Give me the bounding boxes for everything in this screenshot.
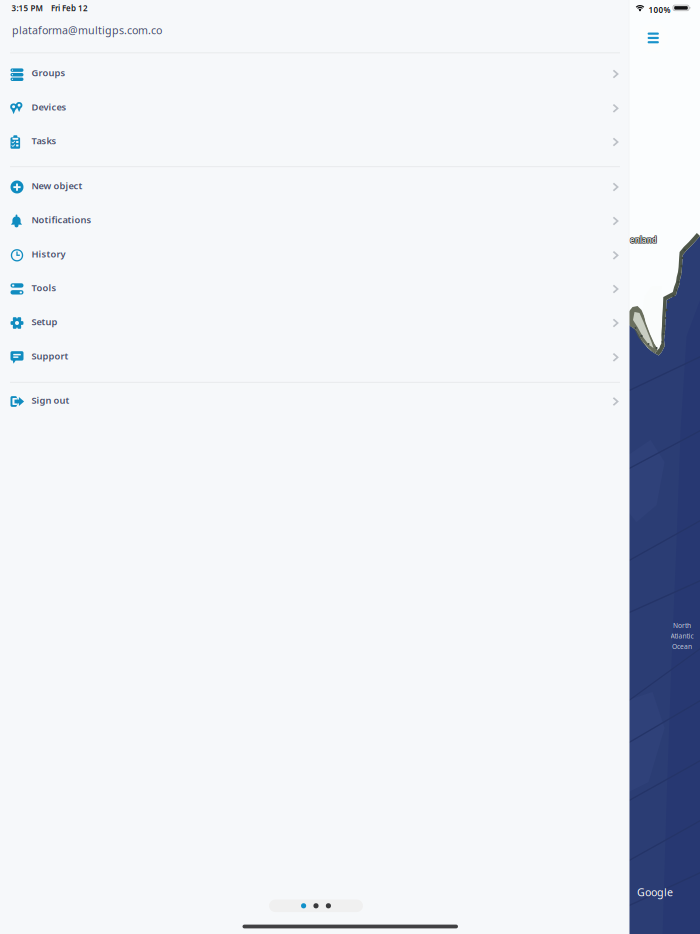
- staticText: Atlantic: [670, 631, 693, 640]
- button[interactable]: Tasks: [0, 125, 628, 159]
- staticText: New object: [31, 179, 82, 192]
- button[interactable]: Sign out: [0, 384, 628, 418]
- staticText: enland: [629, 234, 656, 245]
- staticText: 100%: [648, 5, 670, 15]
- button[interactable]: Setup: [0, 306, 628, 340]
- button[interactable]: History: [0, 238, 628, 272]
- staticText: 3:15 PM: [11, 3, 42, 13]
- staticText: Google: [637, 885, 673, 899]
- button[interactable]: Devices: [0, 91, 628, 125]
- staticText: Notifications: [31, 213, 91, 226]
- staticText: enland: [630, 235, 657, 246]
- staticText: Support: [31, 350, 68, 362]
- staticText: Groups: [31, 66, 65, 79]
- button[interactable]: Support: [0, 340, 628, 374]
- button[interactable]: Groups: [0, 57, 628, 91]
- staticText: Tasks: [31, 134, 56, 147]
- staticText: North: [673, 621, 691, 630]
- staticText: Sign out: [31, 394, 69, 406]
- staticText: Fri Feb 12: [51, 3, 88, 13]
- staticText: enland: [629, 235, 656, 246]
- staticText: enland: [630, 234, 657, 245]
- staticText: enland: [630, 234, 657, 245]
- button[interactable]: Menu: [638, 23, 668, 53]
- button[interactable]: Notifications: [0, 204, 628, 238]
- staticText: Tools: [31, 281, 56, 294]
- staticText: Setup: [31, 315, 57, 328]
- staticText: Ocean: [672, 642, 692, 651]
- button[interactable]: Tools: [0, 272, 628, 306]
- staticText: Devices: [31, 101, 66, 113]
- staticText: History: [31, 248, 65, 260]
- staticText: plataforma@multigps.com.co: [12, 23, 162, 37]
- button[interactable]: New object: [0, 170, 628, 204]
